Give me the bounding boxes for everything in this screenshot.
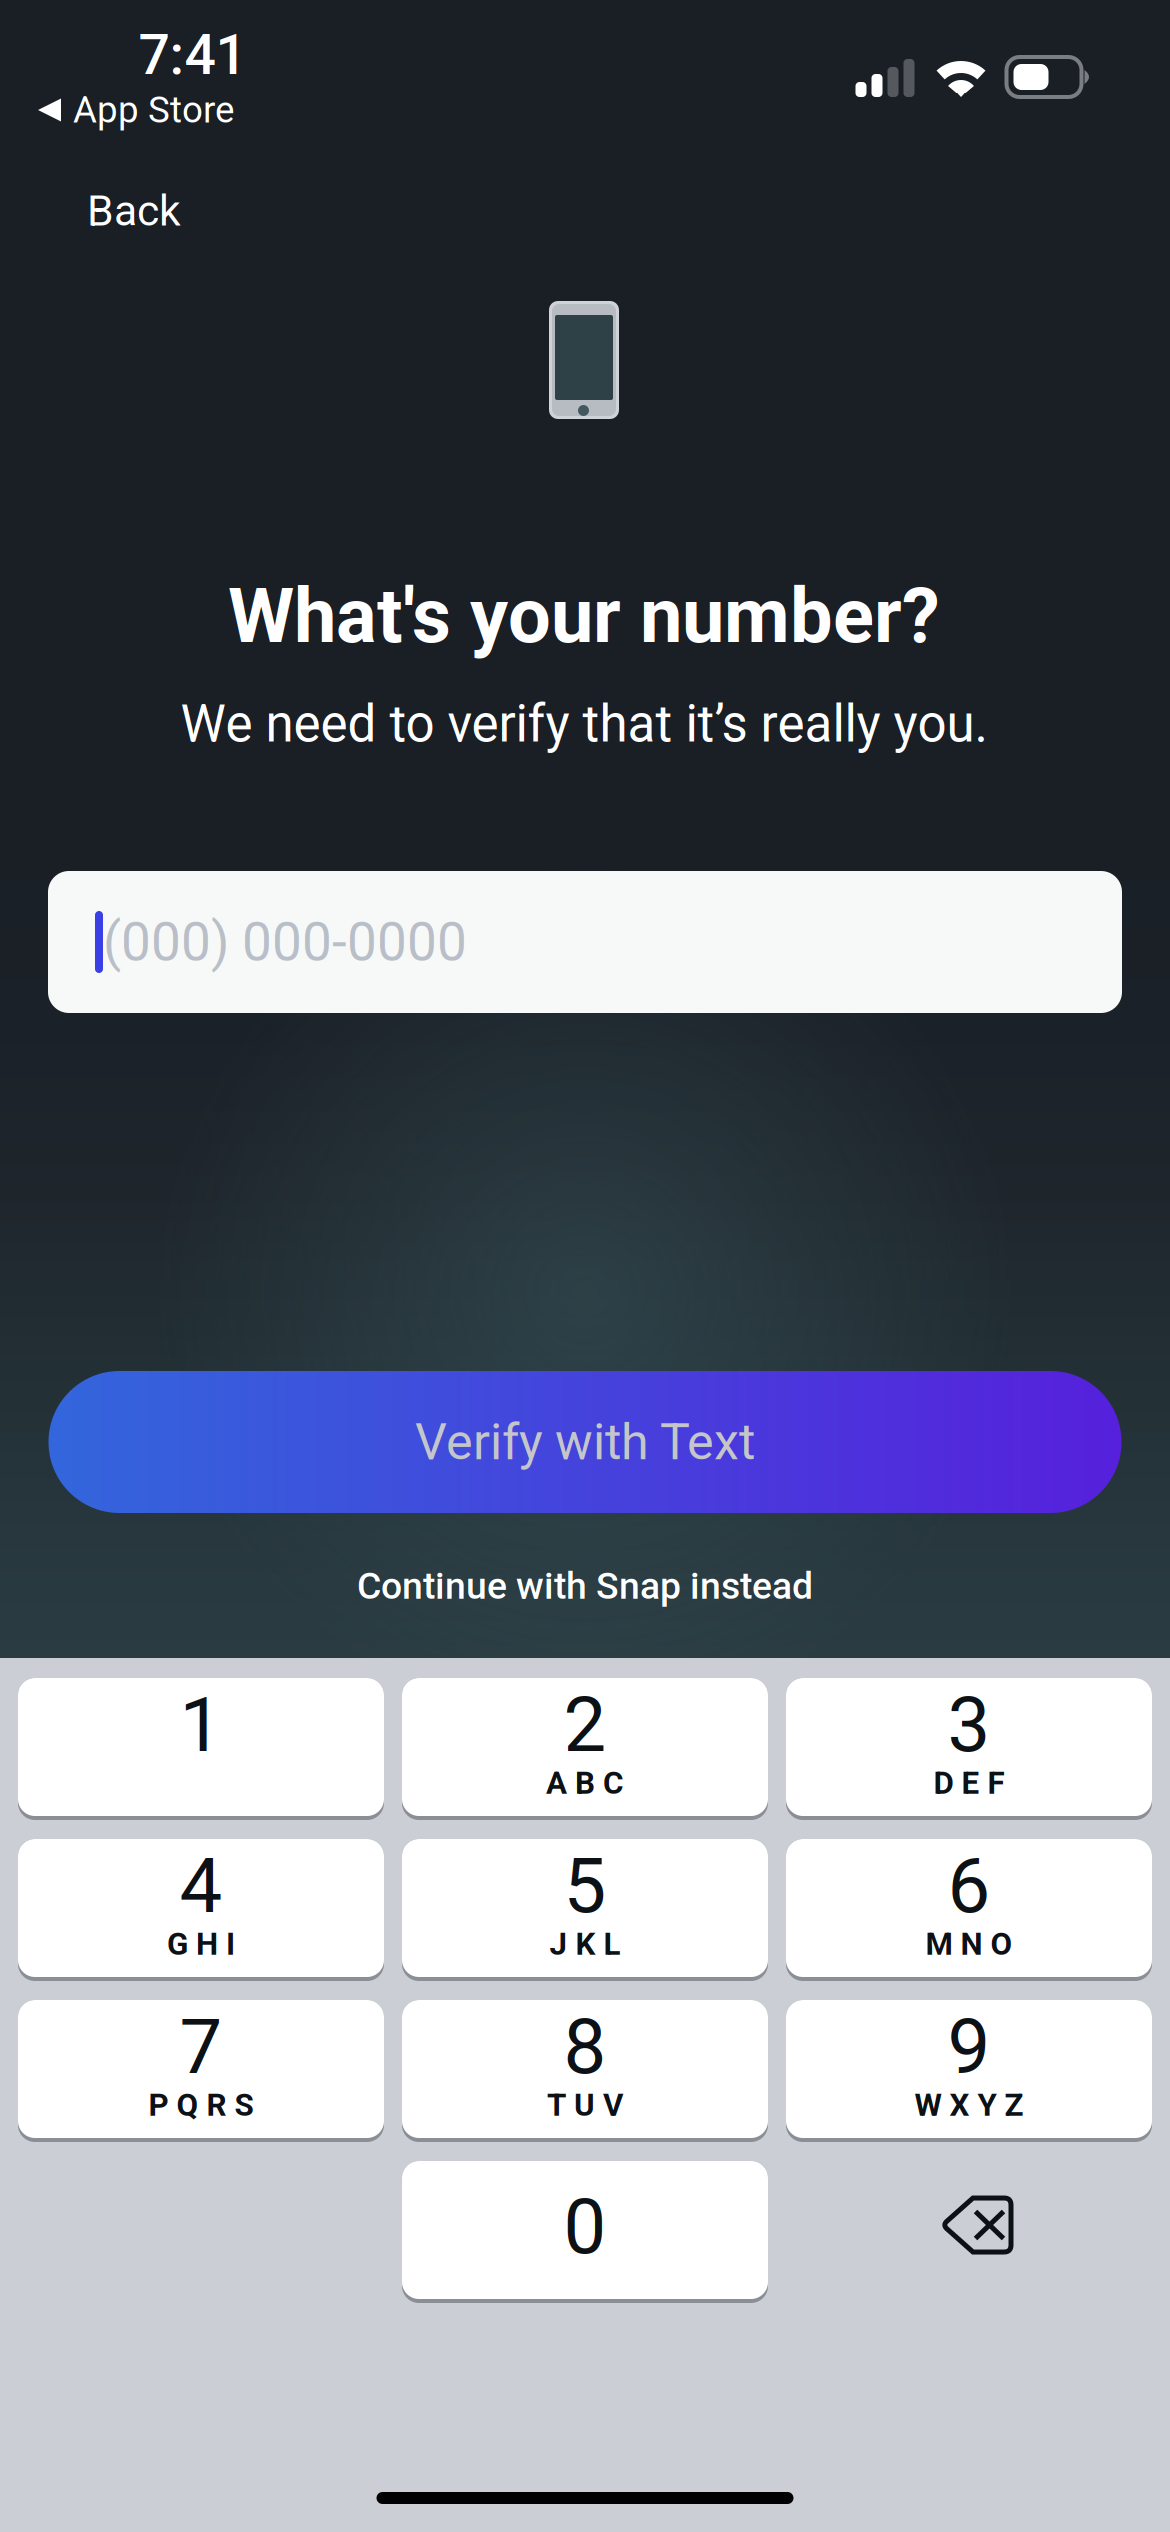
staticText: 0	[563, 2182, 606, 2272]
button[interactable]: 6	[786, 1839, 1152, 1981]
button[interactable]: App Store	[38, 82, 278, 138]
staticText: 9	[947, 2002, 990, 2092]
button[interactable]: 0	[402, 2161, 768, 2303]
staticText: A B C	[546, 1765, 624, 1801]
button[interactable]: 8	[402, 2000, 768, 2142]
staticText: T U V	[547, 2087, 623, 2123]
button[interactable]: Back	[87, 167, 287, 255]
staticText: (000) 000-0000	[103, 911, 467, 973]
staticText: P Q R S	[148, 2087, 253, 2123]
staticText: 6	[947, 1841, 990, 1931]
staticText: 7	[179, 2002, 222, 2092]
staticText: App Store	[73, 88, 234, 131]
staticText: G H I	[167, 1926, 235, 1962]
staticText: M N O	[925, 1926, 1012, 1962]
staticText: D E F	[933, 1765, 1004, 1801]
button[interactable]: Verify with Text	[48, 1371, 1121, 1513]
staticText: What's your number?	[228, 572, 940, 660]
button[interactable]: 1	[18, 1678, 384, 1820]
button[interactable]: 3	[786, 1678, 1152, 1820]
staticText: We need to verify that it’s really you.	[180, 694, 987, 754]
staticText: 8	[563, 2002, 606, 2092]
staticText: 1	[179, 1680, 222, 1770]
staticText: 7:41	[138, 23, 246, 87]
button[interactable]: Continue with Snap instead	[235, 1551, 935, 1621]
staticText: 4	[179, 1841, 222, 1931]
button[interactable]: 2	[402, 1678, 768, 1820]
staticText: J K L	[549, 1926, 620, 1962]
button[interactable]: Delete	[786, 2161, 1152, 2303]
staticText: 2	[563, 1680, 606, 1770]
button[interactable]: 9	[786, 2000, 1152, 2142]
staticText: Verify with Text	[415, 1413, 755, 1471]
button[interactable]: 4	[18, 1839, 384, 1981]
staticText: W X Y Z	[914, 2087, 1023, 2123]
button[interactable]: 7	[18, 2000, 384, 2142]
staticText: 3	[947, 1680, 990, 1770]
staticText: Continue with Snap instead	[357, 1564, 813, 1608]
staticText: Back	[87, 186, 181, 236]
staticText: 5	[563, 1841, 606, 1931]
button[interactable]: 5	[402, 1839, 768, 1981]
